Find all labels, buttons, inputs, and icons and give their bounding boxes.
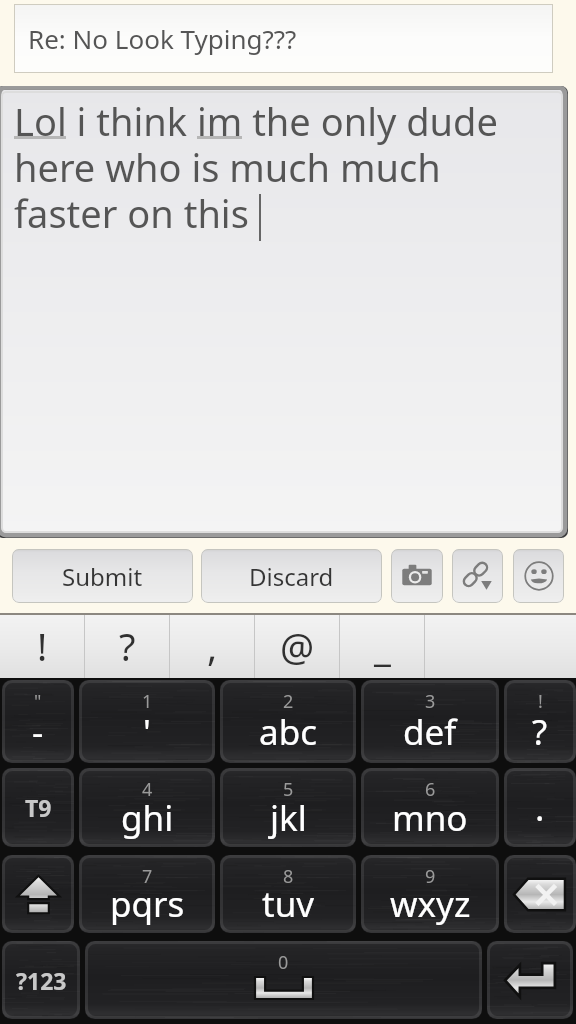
staticText: 0 — [278, 950, 289, 975]
button[interactable]: Enter — [487, 941, 573, 1019]
staticText: 6 — [425, 777, 436, 802]
staticText: abc — [259, 708, 317, 756]
button[interactable]: T9 — [2, 768, 74, 847]
staticText: ?123 — [16, 965, 67, 996]
button[interactable]: 6 — [361, 768, 499, 847]
button[interactable]: Lol i think im the only dude here who is… — [0, 86, 568, 538]
staticText: - — [32, 708, 44, 756]
button[interactable]: Backspace — [504, 855, 576, 933]
staticText: 4 — [142, 777, 153, 802]
staticText: @ — [280, 620, 315, 672]
staticText: 2 — [283, 689, 294, 714]
button[interactable]: Camera — [391, 549, 443, 603]
staticText: mno — [392, 794, 468, 842]
button[interactable]: " — [2, 680, 74, 763]
button[interactable]: 9 — [361, 855, 499, 933]
staticText: , — [207, 620, 218, 672]
button[interactable] — [425, 613, 576, 678]
button[interactable]: 8 — [220, 855, 356, 933]
staticText: tuv — [262, 880, 315, 928]
staticText: ' — [143, 708, 151, 756]
staticText: 1 — [142, 689, 153, 714]
staticText: " — [34, 689, 42, 714]
staticText: 8 — [283, 864, 294, 889]
staticText: ? — [532, 708, 548, 756]
button[interactable]: Shift — [2, 855, 74, 933]
button[interactable]: ?123 — [2, 941, 80, 1019]
button[interactable]: 2 — [220, 680, 356, 763]
button[interactable]: 7 — [79, 855, 215, 933]
staticText: ! — [37, 620, 48, 672]
button[interactable]: . — [504, 768, 576, 847]
staticText: 7 — [142, 864, 153, 889]
staticText: 3 — [425, 689, 436, 714]
staticText: ? — [119, 620, 136, 672]
staticText: Lol i think im the only dude here who is… — [14, 95, 502, 239]
staticText: def — [403, 708, 457, 756]
button[interactable]: Space — [85, 941, 482, 1019]
button[interactable]: Submit — [12, 549, 193, 603]
staticText: T9 — [25, 792, 52, 823]
staticText: Discard — [249, 560, 334, 593]
button[interactable]: @ — [255, 613, 340, 678]
button[interactable]: , — [170, 613, 255, 678]
button[interactable]: _ — [340, 613, 425, 678]
staticText: 9 — [425, 864, 436, 889]
staticText: Re: No Look Typing??? — [28, 21, 297, 56]
staticText: ghi — [121, 794, 174, 842]
staticText: pqrs — [110, 880, 185, 928]
staticText: . — [535, 784, 545, 832]
button[interactable]: Re: No Look Typing??? — [14, 4, 553, 73]
button[interactable]: Attach link — [452, 549, 503, 603]
button[interactable]: Discard — [201, 549, 382, 603]
button[interactable]: ! — [504, 680, 576, 763]
staticText: Submit — [62, 560, 143, 593]
staticText: _ — [374, 620, 391, 672]
staticText: wxyz — [390, 880, 471, 928]
staticText: 5 — [283, 777, 294, 802]
button[interactable]: ? — [85, 613, 170, 678]
staticText: jkl — [270, 794, 307, 842]
button[interactable]: ! — [0, 613, 85, 678]
button[interactable]: Emoji — [513, 549, 564, 603]
button[interactable]: 4 — [79, 768, 215, 847]
staticText: ! — [538, 689, 543, 714]
button[interactable]: 5 — [220, 768, 356, 847]
button[interactable]: 1 — [79, 680, 215, 763]
button[interactable]: 3 — [361, 680, 499, 763]
